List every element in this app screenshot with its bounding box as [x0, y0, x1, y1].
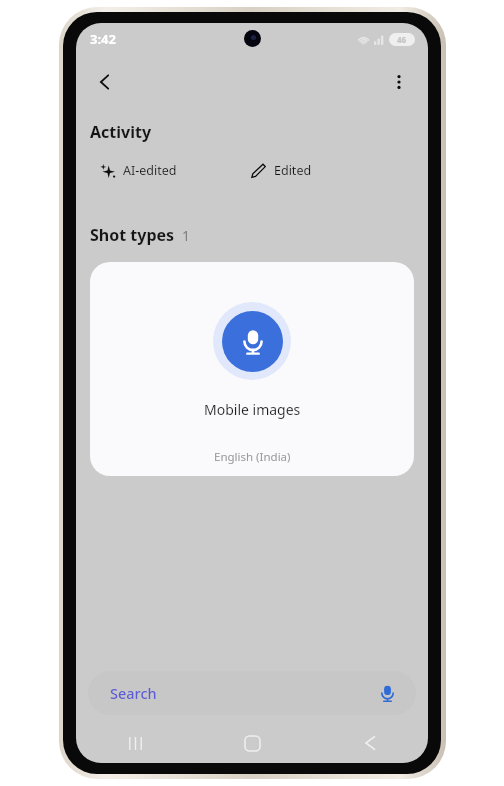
button[interactable]: More options [378, 61, 420, 103]
staticText: Search [110, 683, 157, 703]
button[interactable]: Mobile images [90, 262, 414, 476]
staticText: 46 [397, 34, 407, 45]
staticText: 3:42 [90, 30, 116, 48]
staticText: Activity [90, 121, 152, 143]
button[interactable]: Search [88, 671, 416, 715]
button[interactable]: Back [84, 61, 126, 103]
staticText: AI-edited [123, 162, 177, 179]
staticText: Edited [274, 162, 312, 179]
button[interactable]: Recent apps [76, 723, 194, 763]
staticText: English (India) [214, 449, 291, 465]
button[interactable]: AI-edited [97, 159, 180, 182]
button[interactable]: Voice search [374, 680, 400, 706]
button[interactable]: Back [311, 723, 428, 763]
staticText: Mobile images [204, 400, 301, 419]
staticText: Shot types [90, 224, 175, 246]
button[interactable]: Edited [248, 159, 315, 182]
staticText: 1 [182, 226, 191, 245]
button[interactable]: Home [194, 723, 311, 763]
